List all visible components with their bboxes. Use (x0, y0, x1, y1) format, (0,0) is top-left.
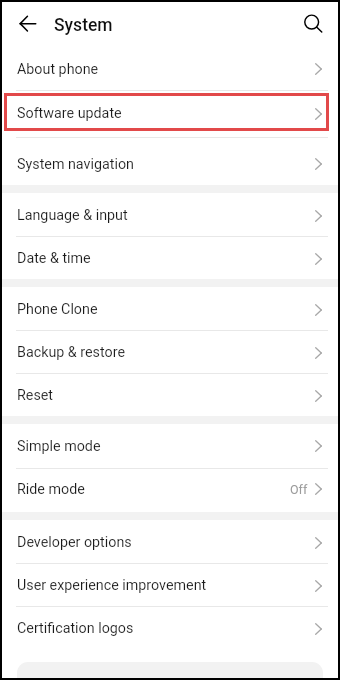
staticText: Certification logos (17, 620, 134, 637)
staticText: System (54, 15, 113, 36)
staticText: Ride mode (17, 481, 85, 498)
button[interactable]: Ride mode (2, 468, 338, 512)
button[interactable]: Software update (2, 90, 338, 137)
button[interactable]: User experience improvement (2, 563, 338, 606)
staticText: Phone Clone (17, 301, 98, 318)
staticText: User experience improvement (17, 577, 207, 594)
button[interactable]: Certification logos (2, 606, 338, 649)
staticText: Date & time (17, 250, 91, 267)
button[interactable]: System navigation (2, 137, 338, 185)
staticText: Developer options (17, 534, 132, 551)
button[interactable]: Simple mode (2, 424, 338, 468)
button[interactable]: Search (293, 4, 333, 44)
button[interactable]: Backup & restore (2, 330, 338, 373)
button[interactable]: Back (8, 4, 48, 44)
button[interactable]: Date & time (2, 236, 338, 279)
staticText: System navigation (17, 156, 134, 173)
staticText: Language & input (17, 207, 128, 224)
button[interactable]: About phone (2, 46, 338, 90)
staticText: About phone (17, 61, 99, 78)
button[interactable]: Reset (2, 373, 338, 416)
button[interactable]: Language & input (2, 193, 338, 236)
button[interactable]: Phone Clone (2, 287, 338, 330)
button[interactable]: Developer options (2, 520, 338, 563)
staticText: Software update (17, 105, 122, 122)
staticText: Reset (17, 387, 54, 404)
staticText: Simple mode (17, 438, 101, 455)
staticText: Backup & restore (17, 344, 125, 361)
staticText: Off (290, 482, 308, 497)
